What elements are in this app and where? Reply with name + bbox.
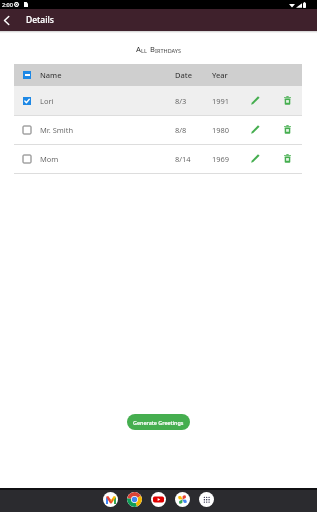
- staticText: 8/14: [175, 154, 191, 164]
- staticText: LL: [141, 47, 147, 54]
- staticText: A: [136, 44, 141, 54]
- button[interactable]: Delete: [278, 120, 296, 138]
- button[interactable]: All apps: [199, 492, 214, 507]
- staticText: Date: [175, 70, 192, 80]
- button[interactable]: Delete: [278, 91, 296, 109]
- staticText: Mom: [40, 154, 59, 164]
- staticText: Name: [40, 70, 62, 80]
- staticText: Mr. Smith: [40, 125, 74, 135]
- button[interactable]: Select: [21, 153, 33, 165]
- button[interactable]: Select all: [21, 69, 33, 81]
- staticText: 1980: [212, 125, 230, 135]
- staticText: Generate Greetings: [133, 419, 184, 426]
- staticText: Year: [212, 70, 228, 80]
- button[interactable]: Photos: [175, 492, 190, 507]
- button[interactable]: Select: [14, 116, 302, 144]
- staticText: 8/8: [175, 125, 187, 135]
- staticText: Details: [26, 14, 54, 26]
- button[interactable]: Chrome: [127, 492, 142, 507]
- staticText: 1991: [212, 96, 230, 106]
- staticText: 1969: [212, 154, 230, 164]
- staticText: B: [150, 44, 155, 54]
- button[interactable]: Back: [0, 14, 13, 27]
- button[interactable]: Edit: [246, 149, 264, 167]
- button[interactable]: Edit: [246, 91, 264, 109]
- button[interactable]: Edit: [246, 120, 264, 138]
- staticText: IRTHDAYS: [155, 47, 182, 54]
- button[interactable]: Selected: [14, 86, 302, 115]
- button[interactable]: Selected: [21, 95, 33, 107]
- staticText: 2:00: [2, 1, 13, 8]
- button[interactable]: Gmail: [103, 492, 118, 507]
- button[interactable]: Select: [21, 124, 33, 136]
- button[interactable]: Generate Greetings: [127, 414, 190, 430]
- button[interactable]: Select: [14, 145, 302, 173]
- button[interactable]: Delete: [278, 149, 296, 167]
- staticText: 8/3: [175, 96, 187, 106]
- button[interactable]: YouTube: [151, 492, 166, 507]
- staticText: Lori: [40, 96, 54, 106]
